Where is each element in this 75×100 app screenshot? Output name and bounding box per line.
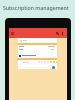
button[interactable]: Add [52,66,55,69]
button[interactable]: Navigation menu [10,31,15,36]
staticText: Subscription management [3,4,69,11]
button[interactable]: Add [18,38,57,69]
button[interactable]: More options [60,31,65,36]
button[interactable]: Search [55,31,60,36]
